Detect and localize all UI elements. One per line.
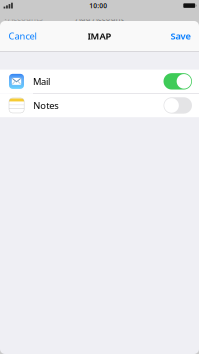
staticText: Add Account: [75, 12, 123, 23]
button[interactable]: Notes: [0, 94, 199, 117]
staticText: Notes: [33, 99, 58, 112]
button[interactable]: Cancel: [0, 21, 42, 51]
staticText: IMAP: [87, 30, 111, 42]
staticText: Mail: [33, 75, 50, 88]
staticText: 10:00: [89, 1, 107, 10]
button[interactable]: Mail: [0, 70, 199, 93]
staticText: Cancel: [8, 30, 36, 42]
button[interactable]: Save: [164, 21, 199, 51]
staticText: Save: [170, 30, 190, 42]
staticText: Accounts: [8, 12, 43, 23]
